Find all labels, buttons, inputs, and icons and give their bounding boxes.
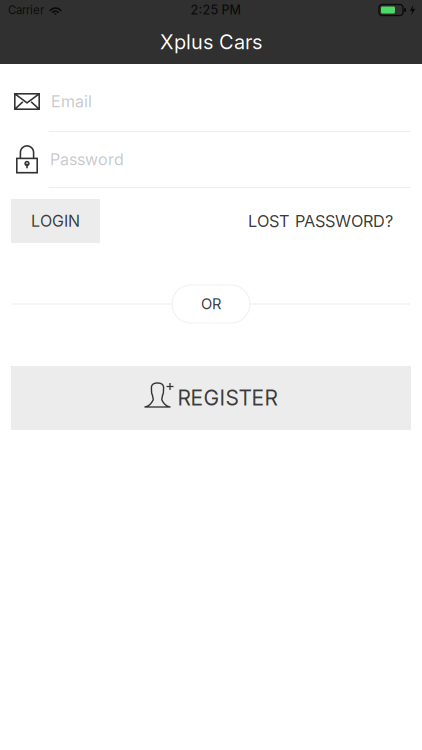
staticText: Carrier: [8, 3, 44, 17]
staticText: LOGIN: [31, 211, 80, 231]
staticText: Password: [50, 150, 124, 169]
button[interactable]: REGISTER: [11, 366, 411, 430]
staticText: 2:25 PM: [190, 2, 240, 18]
button[interactable]: LOGIN: [11, 199, 100, 243]
staticText: REGISTER: [177, 385, 277, 411]
staticText: Email: [51, 92, 92, 111]
staticText: OR: [201, 295, 221, 313]
staticText: Xplus Cars: [160, 30, 262, 54]
button[interactable]: LOST PASSWORD?: [248, 199, 393, 243]
staticText: LOST PASSWORD?: [248, 211, 393, 231]
